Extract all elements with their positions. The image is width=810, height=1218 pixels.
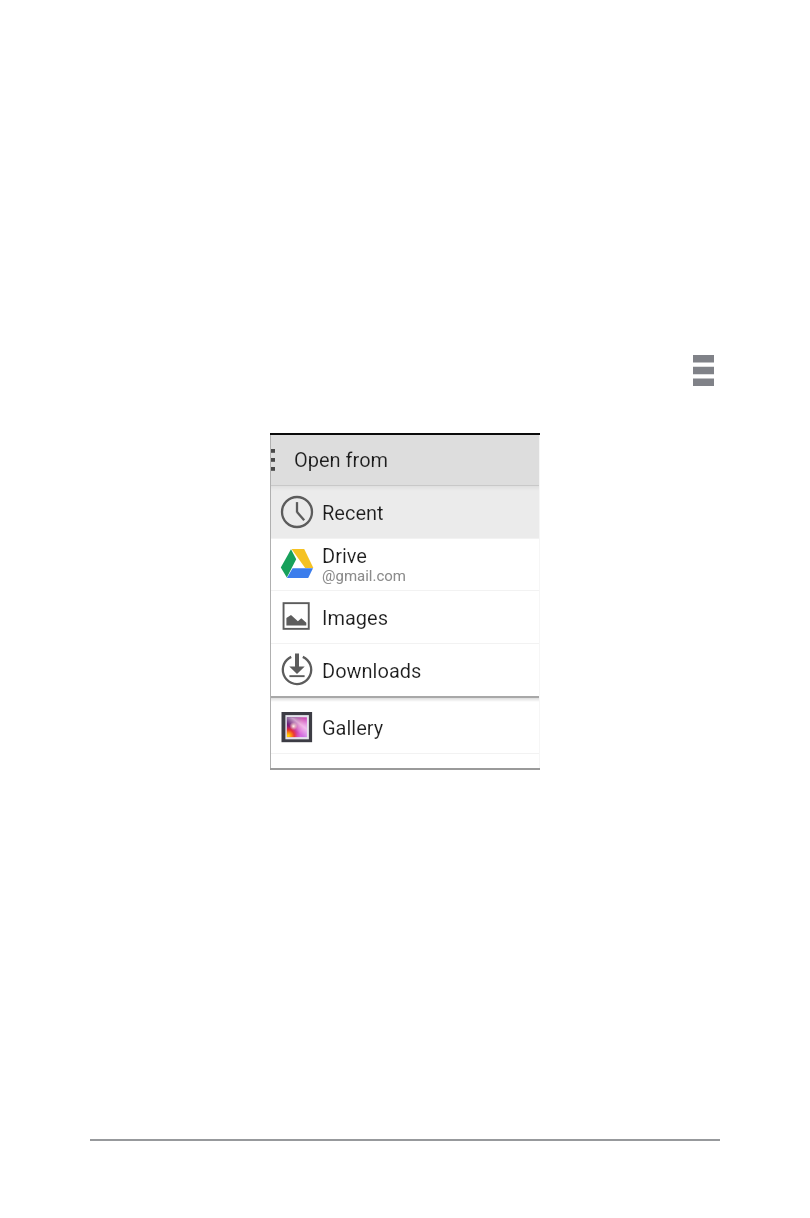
staticText: Images (322, 606, 389, 629)
staticText: Recent (322, 501, 384, 524)
button[interactable]: Images (270, 591, 540, 643)
button[interactable]: Gallery (270, 698, 540, 753)
button[interactable]: Recent (270, 486, 540, 538)
button[interactable]: Menu (683, 348, 723, 392)
button[interactable]: Drive (270, 539, 540, 590)
staticText: Open from (294, 448, 389, 471)
button[interactable]: Downloads (270, 644, 540, 696)
staticText: Drive (322, 544, 367, 567)
button[interactable]: Open from (270, 435, 540, 485)
staticText: @gmail.com (322, 567, 407, 585)
staticText: Gallery (322, 716, 384, 739)
staticText: Downloads (322, 659, 422, 682)
